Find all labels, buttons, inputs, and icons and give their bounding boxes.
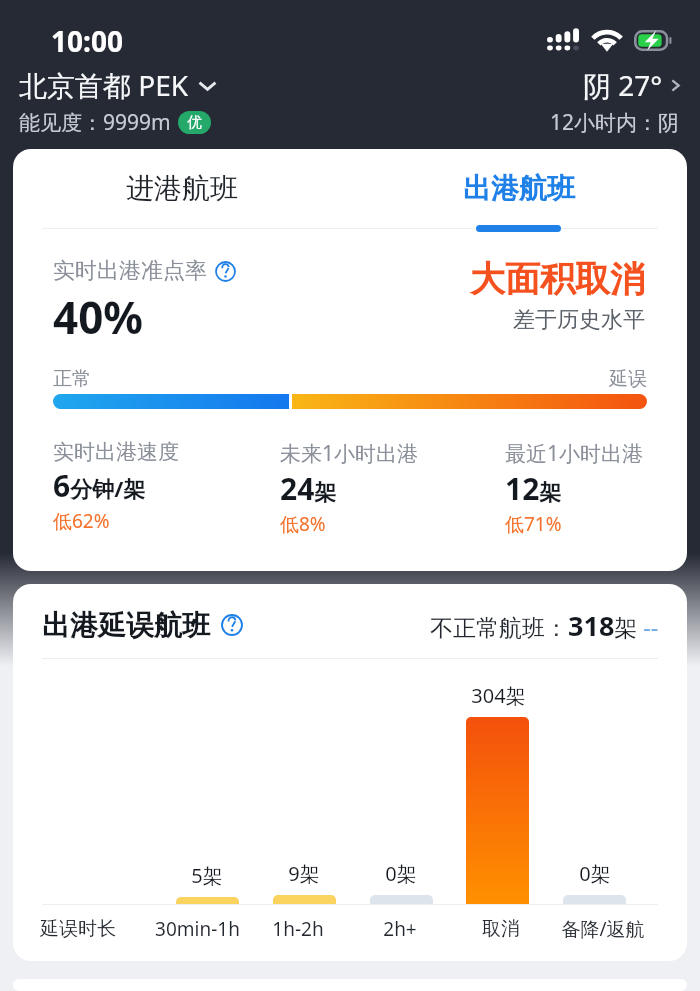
- staticText: 实时出港速度: [53, 439, 179, 465]
- staticText: 出港航班: [463, 171, 575, 206]
- staticText: 正常: [53, 367, 91, 391]
- staticText: 1h-2h: [272, 916, 324, 942]
- staticText: 未来1小时出港: [280, 439, 419, 468]
- staticText: 差于历史水平: [513, 306, 645, 334]
- staticText: 0架: [385, 860, 417, 887]
- staticText: 12小时内：阴: [550, 108, 680, 137]
- staticText: 进港航班: [126, 171, 238, 206]
- staticText: 大面积取消: [470, 257, 645, 301]
- staticText: 9架: [288, 860, 320, 887]
- staticText: 最近1小时出港: [505, 439, 644, 468]
- staticText: 5架: [191, 862, 223, 889]
- staticText: 出港延误航班: [42, 608, 210, 643]
- staticText: 6分钟/架: [53, 465, 146, 506]
- staticText: 低8%: [280, 511, 326, 537]
- button[interactable]: 北京首都 PEK: [19, 66, 217, 104]
- staticText: 优: [187, 113, 202, 132]
- staticText: 24架: [280, 468, 337, 509]
- button[interactable]: 出港航班: [350, 149, 687, 228]
- staticText: 北京首都 PEK: [19, 66, 189, 104]
- staticText: 0架: [579, 860, 611, 887]
- staticText: 30min-1h: [155, 916, 240, 942]
- other: 说明: [215, 261, 236, 282]
- staticText: 取消: [482, 917, 520, 941]
- staticText: 10:00: [51, 22, 123, 60]
- staticText: 40%: [53, 287, 144, 347]
- staticText: 不正常航班：318架 --: [430, 607, 659, 644]
- staticText: 备降/返航: [561, 916, 645, 942]
- staticText: 低71%: [505, 511, 562, 537]
- staticText: 实时出港准点率: [53, 257, 207, 285]
- staticText: 12架: [505, 468, 562, 509]
- button[interactable]: 进港航班: [13, 149, 350, 228]
- button[interactable]: 阴 27°: [583, 66, 680, 104]
- staticText: 能见度：9999m: [19, 108, 171, 137]
- staticText: 延误: [609, 367, 647, 391]
- staticText: 304架: [471, 682, 526, 709]
- staticText: 延误时长: [40, 917, 116, 941]
- other: 说明: [221, 614, 243, 636]
- staticText: 低62%: [53, 508, 110, 534]
- staticText: 阴 27°: [583, 66, 663, 104]
- staticText: 2h+: [383, 916, 417, 942]
